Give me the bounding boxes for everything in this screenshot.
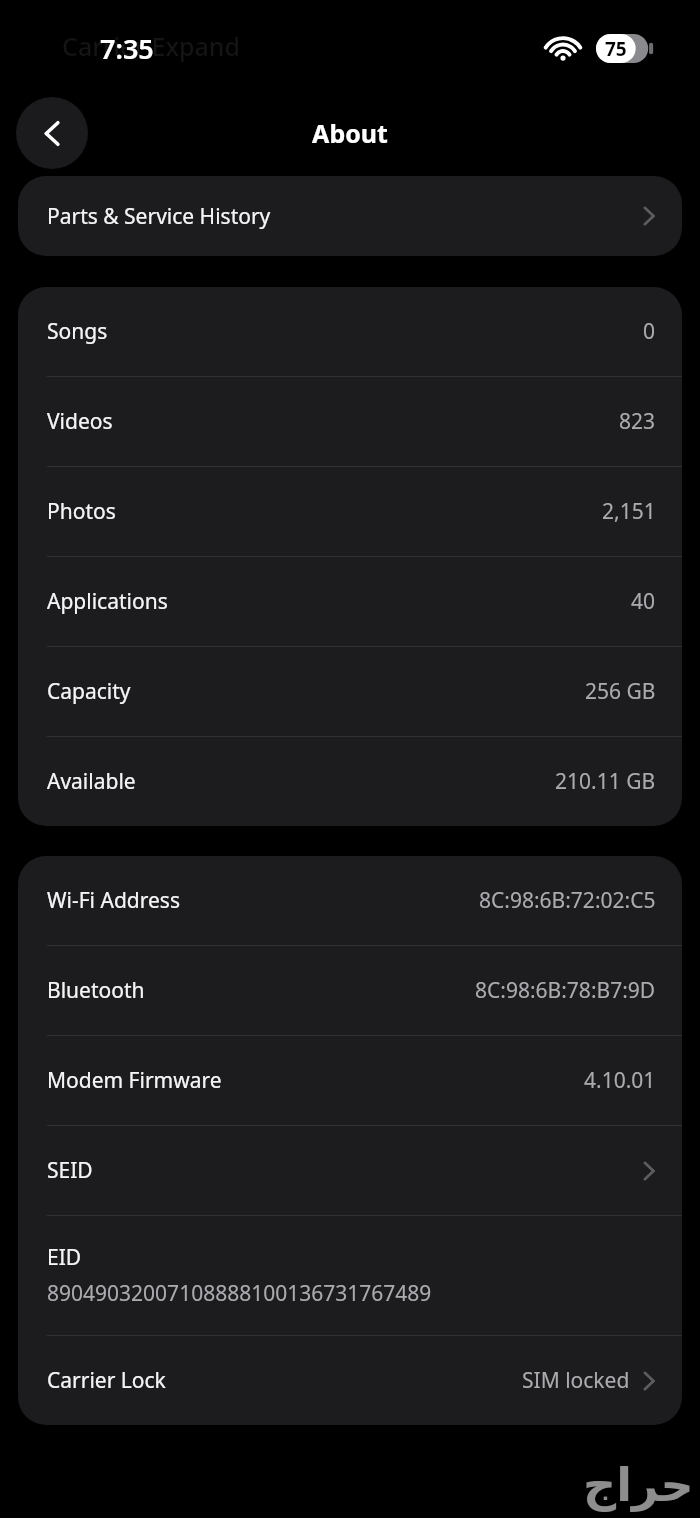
staticText: Capacity bbox=[47, 677, 131, 706]
staticText: About bbox=[312, 116, 388, 150]
staticText: Carrier Expand bbox=[62, 29, 240, 63]
staticText: 7:35 bbox=[100, 30, 154, 67]
staticText: Applications bbox=[47, 587, 168, 616]
staticText: 4.10.01 bbox=[584, 1066, 656, 1095]
button[interactable]: Parts & Service History bbox=[18, 176, 682, 256]
staticText: Carrier Lock bbox=[47, 1366, 166, 1395]
button[interactable]: SEID bbox=[18, 1126, 682, 1215]
staticText: 210.11 GB bbox=[555, 767, 656, 796]
button[interactable]: Videos bbox=[18, 377, 682, 466]
staticText: EID bbox=[47, 1243, 82, 1272]
button[interactable]: Carrier Lock bbox=[18, 1336, 682, 1425]
button[interactable]: Available bbox=[18, 737, 682, 826]
button[interactable]: Photos bbox=[18, 467, 682, 556]
staticText: Modem Firmware bbox=[47, 1066, 222, 1095]
staticText: Available bbox=[47, 767, 136, 796]
staticText: Songs bbox=[47, 317, 108, 346]
button[interactable]: Capacity bbox=[18, 647, 682, 736]
staticText: 823 bbox=[619, 407, 656, 436]
button[interactable]: Songs bbox=[18, 287, 682, 376]
staticText: Wi-Fi Address bbox=[47, 886, 180, 915]
staticText: Videos bbox=[47, 407, 113, 436]
staticText: 8C:98:6B:72:02:C5 bbox=[479, 886, 656, 915]
button[interactable]: Wi-Fi Address bbox=[18, 856, 682, 945]
staticText: Photos bbox=[47, 497, 116, 526]
staticText: 256 GB bbox=[585, 677, 656, 706]
staticText: 2,151 bbox=[602, 497, 656, 526]
staticText: 89049032007108888100136731767489 bbox=[47, 1279, 432, 1308]
button[interactable]: Modem Firmware bbox=[18, 1036, 682, 1125]
button[interactable]: Back bbox=[16, 97, 88, 169]
staticText: 75 bbox=[605, 36, 627, 62]
button[interactable]: EID bbox=[18, 1216, 682, 1335]
staticText: 40 bbox=[631, 587, 656, 616]
staticText: حراج bbox=[583, 1458, 694, 1512]
button[interactable]: Applications bbox=[18, 557, 682, 646]
staticText: SIM locked bbox=[522, 1366, 630, 1395]
staticText: 8C:98:6B:78:B7:9D bbox=[475, 976, 656, 1005]
staticText: Parts & Service History bbox=[47, 202, 271, 231]
staticText: 0 bbox=[643, 317, 656, 346]
staticText: SEID bbox=[47, 1156, 93, 1185]
button[interactable]: Bluetooth bbox=[18, 946, 682, 1035]
staticText: Bluetooth bbox=[47, 976, 145, 1005]
